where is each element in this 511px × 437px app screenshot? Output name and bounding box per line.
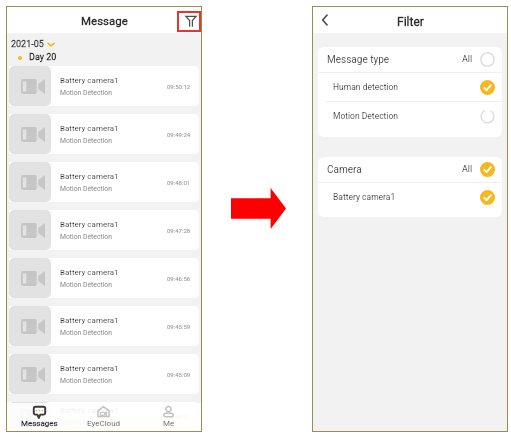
staticText: Battery camera1 xyxy=(60,364,119,373)
button[interactable]: Message type xyxy=(327,47,495,72)
button[interactable]: Battery camera1 xyxy=(9,66,199,106)
staticText: 09:50:12 xyxy=(167,83,191,90)
staticText: All xyxy=(462,54,473,65)
staticText: Battery camera1 xyxy=(60,76,119,85)
button[interactable]: Battery camera1 xyxy=(9,354,199,394)
staticText: Battery camera1 xyxy=(60,268,119,277)
staticText: Motion Detection xyxy=(60,377,112,385)
staticText: Me xyxy=(163,419,175,428)
button[interactable]: Me xyxy=(136,403,201,431)
staticText: Filter xyxy=(397,15,424,29)
staticText: Motion Detection xyxy=(60,419,112,427)
staticText: Battery camera1 xyxy=(60,124,119,133)
staticText: 09:45:09 xyxy=(167,371,191,378)
staticText: Motion Detection xyxy=(60,185,112,193)
staticText: Camera xyxy=(327,164,362,176)
button[interactable]: Messages xyxy=(7,403,71,431)
staticText: Battery camera1 xyxy=(60,220,119,229)
staticText: Message xyxy=(81,14,128,27)
staticText: Messages xyxy=(21,419,58,428)
staticText: Motion Detection xyxy=(60,233,112,241)
staticText: 09:44:31 xyxy=(167,413,191,420)
staticText: 09:48:01 xyxy=(167,179,191,186)
staticText: All xyxy=(462,164,473,175)
staticText: Human detection xyxy=(333,82,399,92)
button[interactable]: Battery camera1 xyxy=(333,183,495,211)
staticText: 09:49:24 xyxy=(167,131,191,138)
staticText: Motion Detection xyxy=(60,89,112,97)
button[interactable]: Human detection xyxy=(333,73,495,101)
staticText: 09:45:59 xyxy=(167,323,191,330)
staticText: Battery camera1 xyxy=(60,172,119,181)
button[interactable]: Battery camera1 xyxy=(9,210,199,250)
button[interactable]: Battery camera1 xyxy=(9,306,199,346)
staticText: Motion Detection xyxy=(60,281,112,289)
staticText: EyeCloud xyxy=(87,419,121,428)
staticText: Motion Detection xyxy=(60,329,112,337)
staticText: Motion Detection xyxy=(60,137,112,145)
staticText: Battery camera1 xyxy=(60,316,119,325)
button[interactable]: Back xyxy=(317,12,333,28)
button[interactable]: EyeCloud xyxy=(71,403,136,431)
button[interactable]: Battery camera1 xyxy=(9,114,199,154)
staticText: Day 20 xyxy=(29,52,57,63)
staticText: Message type xyxy=(327,54,390,66)
staticText: 2021-05 xyxy=(11,39,44,50)
button[interactable]: Battery camera1 xyxy=(9,258,199,298)
button[interactable]: Filter xyxy=(177,11,201,32)
staticText: 09:46:56 xyxy=(167,275,191,282)
button[interactable]: Battery camera1 xyxy=(9,162,199,202)
button[interactable]: Battery camera1 xyxy=(9,402,199,431)
staticText: Motion Detection xyxy=(333,111,398,121)
staticText: Battery camera1 xyxy=(333,192,396,202)
staticText: 09:47:28 xyxy=(167,227,191,234)
staticText: Battery camera1 xyxy=(60,406,119,415)
button[interactable]: Motion Detection xyxy=(333,102,495,130)
button[interactable]: Camera xyxy=(327,157,495,182)
